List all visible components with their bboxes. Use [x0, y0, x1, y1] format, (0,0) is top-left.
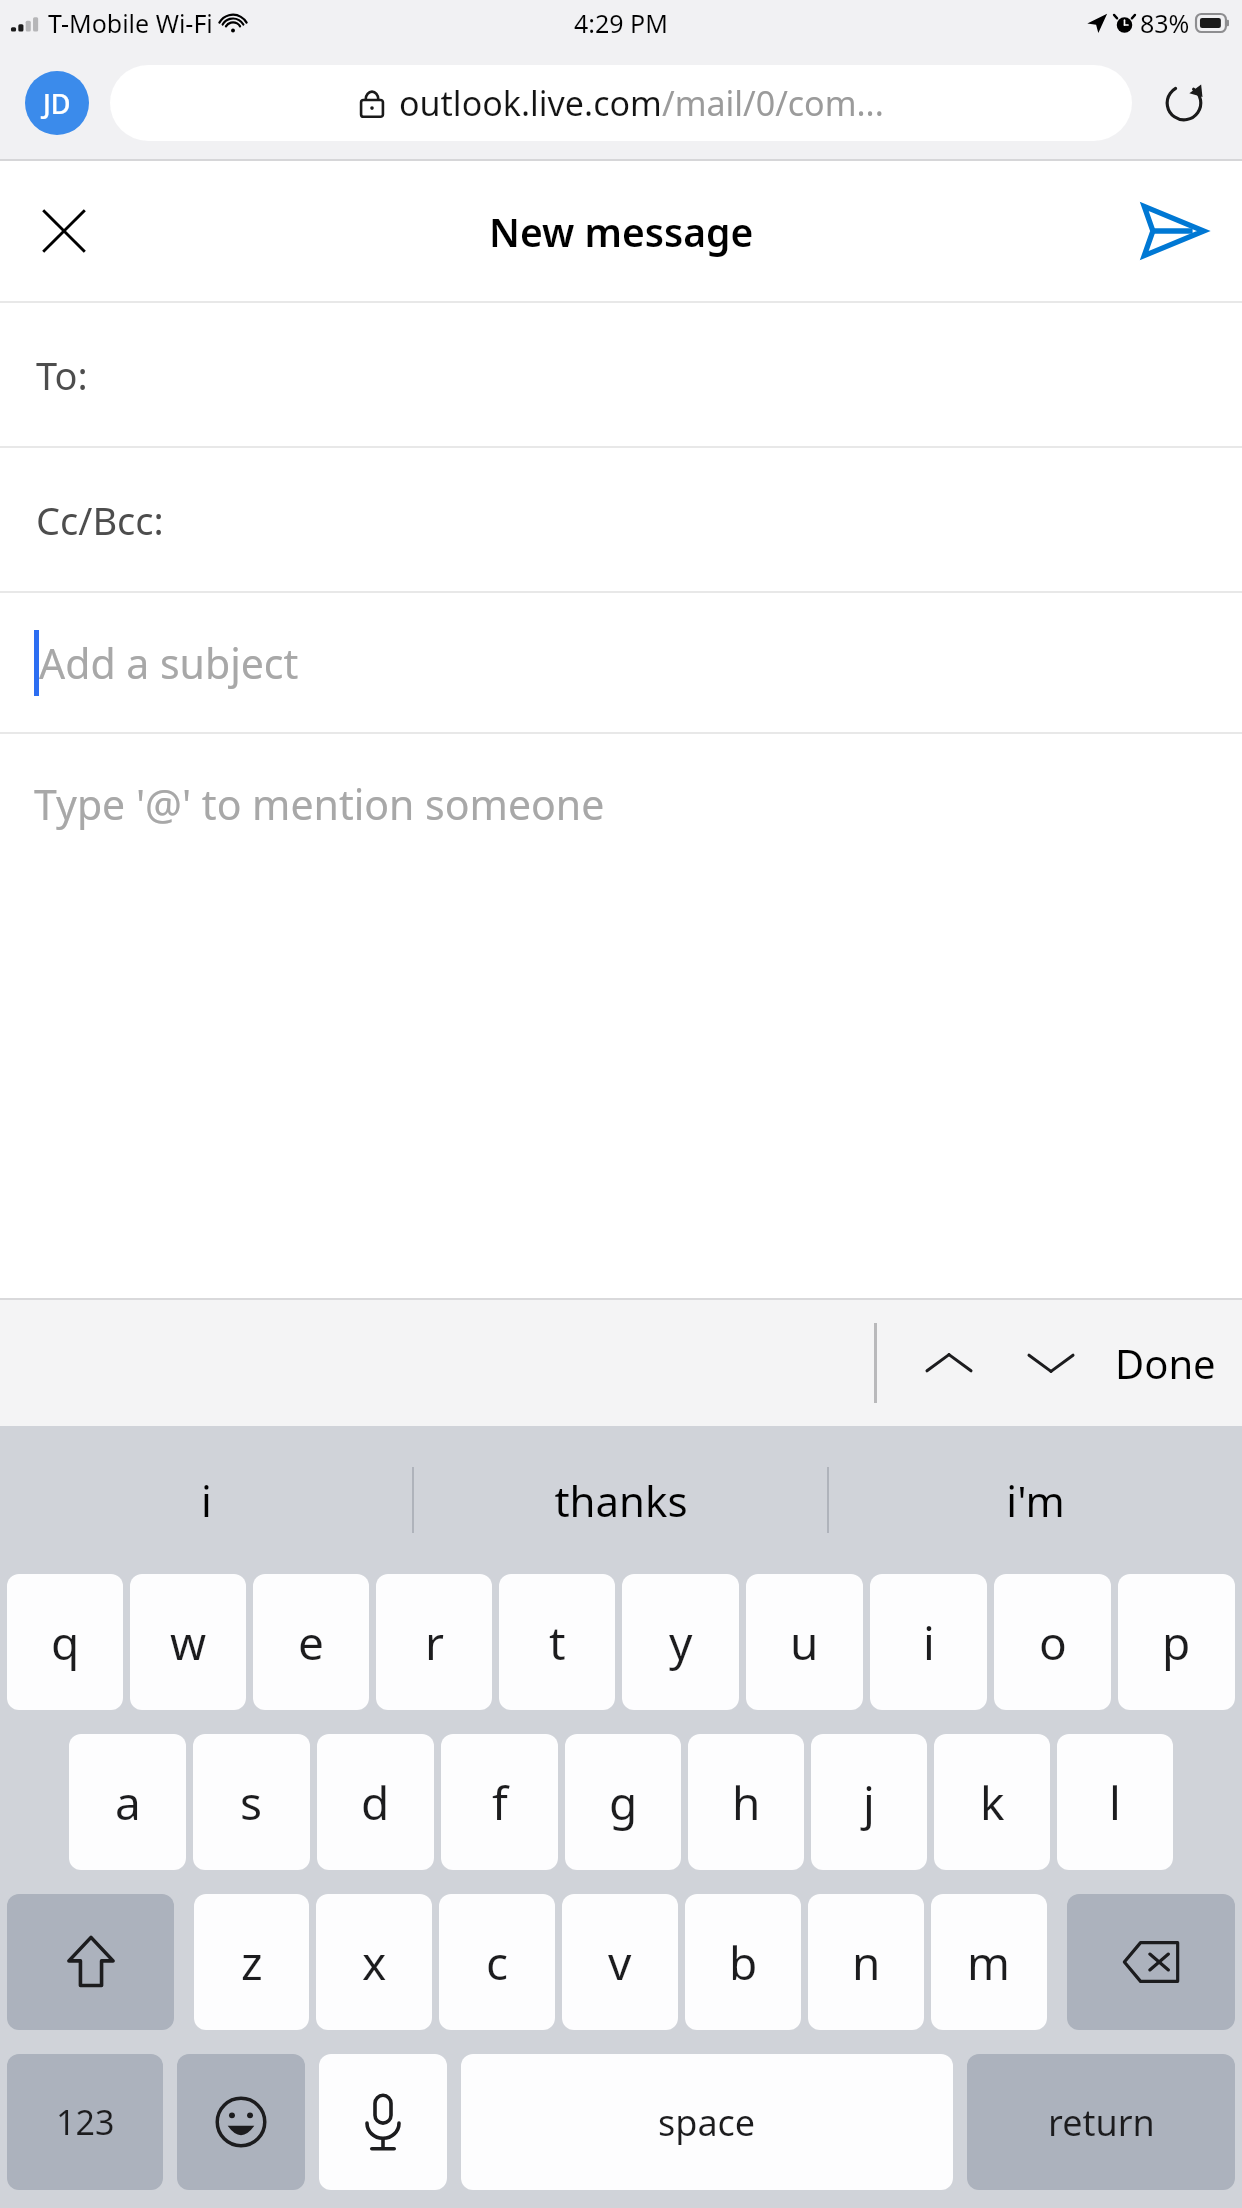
button[interactable]: thanks — [414, 1426, 827, 1574]
button[interactable]: i — [0, 1426, 412, 1574]
button[interactable]: Dictation — [319, 2054, 447, 2190]
button[interactable]: b — [685, 1894, 801, 2030]
button[interactable]: s — [193, 1734, 310, 1870]
staticText: s — [240, 1771, 263, 1834]
staticText: f — [492, 1771, 508, 1834]
staticText: New message — [489, 205, 754, 258]
button[interactable]: x — [316, 1894, 432, 2030]
button[interactable]: u — [746, 1574, 863, 1710]
button[interactable]: 123 — [7, 2054, 163, 2190]
staticText: l — [1109, 1771, 1121, 1834]
staticText: To: — [36, 349, 88, 401]
staticText: v — [608, 1931, 632, 1994]
staticText: j — [863, 1771, 875, 1834]
staticText: m — [967, 1931, 1011, 1994]
button[interactable]: y — [622, 1574, 739, 1710]
staticText: k — [980, 1771, 1005, 1834]
staticText: t — [549, 1611, 566, 1674]
button[interactable]: j — [811, 1734, 927, 1870]
staticText: u — [790, 1611, 819, 1674]
button[interactable]: Shift — [7, 1894, 174, 2030]
button[interactable]: p — [1118, 1574, 1235, 1710]
button[interactable]: Next field — [1005, 1317, 1097, 1409]
button[interactable]: Close — [16, 183, 112, 279]
staticText: h — [732, 1771, 761, 1834]
button[interactable]: Add a subject — [0, 593, 1242, 732]
staticText: JD — [43, 85, 71, 122]
button[interactable]: Send — [1126, 183, 1222, 279]
staticText: 4:29 PM — [574, 6, 668, 40]
staticText: i — [923, 1611, 935, 1674]
staticText: space — [658, 2098, 756, 2147]
staticText: 123 — [56, 2099, 115, 2145]
button[interactable]: d — [317, 1734, 434, 1870]
button[interactable]: Reload — [1156, 75, 1212, 131]
button[interactable]: o — [994, 1574, 1111, 1710]
staticText: z — [241, 1931, 263, 1994]
button[interactable]: f — [441, 1734, 558, 1870]
staticText: n — [852, 1931, 881, 1994]
button[interactable]: Done — [1115, 1336, 1216, 1390]
staticText: e — [298, 1611, 324, 1674]
staticText: Done — [1115, 1336, 1216, 1390]
button[interactable]: c — [439, 1894, 555, 2030]
staticText: g — [609, 1771, 638, 1834]
staticText: r — [425, 1611, 444, 1674]
button[interactable]: h — [688, 1734, 804, 1870]
button[interactable]: z — [194, 1894, 309, 2030]
staticText: /mail/0/com... — [662, 80, 884, 126]
staticText: p — [1162, 1611, 1191, 1674]
button[interactable]: v — [562, 1894, 678, 2030]
button[interactable]: outlook.live.com — [110, 65, 1132, 141]
staticText: c — [486, 1931, 509, 1994]
staticText: y — [669, 1611, 693, 1674]
button[interactable]: space — [461, 2054, 953, 2190]
staticText: a — [115, 1771, 141, 1834]
button[interactable]: g — [565, 1734, 681, 1870]
staticText: i'm — [1006, 1472, 1065, 1529]
button[interactable]: q — [7, 1574, 123, 1710]
staticText: q — [51, 1611, 80, 1674]
button[interactable]: To: — [0, 303, 1242, 446]
button[interactable]: Type '@' to mention someone — [0, 734, 1242, 1298]
staticText: o — [1039, 1611, 1067, 1674]
staticText: Cc/Bcc: — [36, 494, 164, 546]
staticText: i — [201, 1472, 212, 1529]
button[interactable]: r — [376, 1574, 492, 1710]
button[interactable]: n — [808, 1894, 924, 2030]
button[interactable]: i'm — [829, 1426, 1242, 1574]
staticText: Type '@' to mention someone — [34, 776, 605, 832]
button[interactable]: return — [967, 2054, 1235, 2190]
button[interactable]: Backspace — [1067, 1894, 1235, 2030]
button[interactable]: Profile JD — [25, 71, 89, 135]
button[interactable]: w — [130, 1574, 246, 1710]
staticText: b — [729, 1931, 758, 1994]
staticText: Add a subject — [39, 635, 299, 691]
staticText: return — [1048, 2098, 1155, 2147]
staticText: thanks — [554, 1472, 688, 1529]
button[interactable]: k — [934, 1734, 1050, 1870]
staticText: T-Mobile Wi-Fi — [48, 6, 213, 40]
button[interactable]: t — [499, 1574, 615, 1710]
staticText: x — [362, 1931, 387, 1994]
button[interactable]: m — [931, 1894, 1047, 2030]
button[interactable]: a — [69, 1734, 186, 1870]
staticText: 83% — [1140, 6, 1190, 40]
staticText: d — [361, 1771, 390, 1834]
button[interactable]: e — [253, 1574, 369, 1710]
button[interactable]: Emoji — [177, 2054, 305, 2190]
button[interactable]: Cc/Bcc: — [0, 448, 1242, 591]
button[interactable]: Previous field — [903, 1317, 995, 1409]
staticText: w — [170, 1611, 207, 1674]
button[interactable]: i — [870, 1574, 987, 1710]
staticText: outlook.live.com — [399, 80, 662, 126]
button[interactable]: l — [1057, 1734, 1173, 1870]
